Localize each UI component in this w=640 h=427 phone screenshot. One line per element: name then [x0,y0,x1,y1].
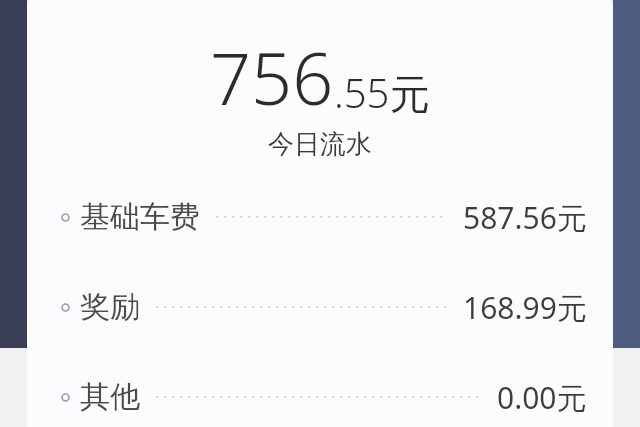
button[interactable]: 其他 [27,375,613,419]
staticText: .55元 [334,65,430,120]
staticText: 756 [210,28,334,126]
staticText: 0.00元 [497,377,587,418]
staticText: 今日流水 [27,128,613,161]
staticText: 其他 [80,378,140,416]
staticText: 奖励 [80,288,140,326]
button[interactable]: 奖励 [27,285,613,329]
staticText: 基础车费 [80,198,200,236]
staticText: 587.56元 [463,197,587,238]
button[interactable]: 基础车费 [27,195,613,239]
staticText: 168.99元 [463,287,587,328]
